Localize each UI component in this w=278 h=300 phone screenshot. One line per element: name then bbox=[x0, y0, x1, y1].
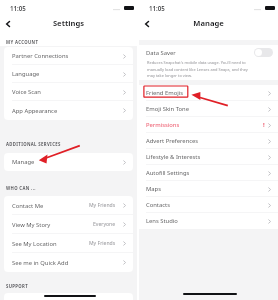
staticText: Advert Preferences bbox=[146, 137, 199, 145]
button[interactable]: See me in Quick Add bbox=[4, 253, 133, 272]
staticText: Maps bbox=[146, 185, 161, 193]
button[interactable]: Contacts bbox=[139, 197, 278, 213]
staticText: Data Saver bbox=[146, 49, 176, 57]
button[interactable]: Emoji Skin Tone bbox=[139, 101, 278, 117]
staticText: Language bbox=[12, 70, 40, 78]
button[interactable]: Language bbox=[4, 65, 133, 83]
staticText: Manage bbox=[12, 158, 35, 166]
staticText: My Friends bbox=[89, 240, 116, 247]
staticText: Manage bbox=[139, 18, 278, 28]
staticText: Voice Scan bbox=[12, 88, 41, 96]
button[interactable]: Contact Me bbox=[4, 196, 133, 215]
staticText: 11:05 bbox=[10, 4, 26, 12]
staticText: Everyone bbox=[93, 221, 116, 228]
button[interactable]: Permissions bbox=[139, 117, 278, 133]
button[interactable]: Data Saver toggle bbox=[254, 48, 273, 57]
button[interactable]: Autofill Settings bbox=[139, 165, 278, 181]
button[interactable]: Partner Connections bbox=[4, 47, 133, 65]
staticText: Contact Me bbox=[12, 202, 44, 210]
button[interactable]: App Appearance bbox=[4, 101, 133, 120]
staticText: Reduces Snapchat's mobile data usage. Yo… bbox=[147, 60, 251, 78]
staticText: Autofill Settings bbox=[146, 169, 190, 177]
staticText: Settings bbox=[0, 18, 137, 28]
button[interactable]: Lens Studio bbox=[139, 213, 278, 229]
staticText: My Friends bbox=[89, 202, 116, 209]
button[interactable]: Advert Preferences bbox=[139, 133, 278, 149]
button[interactable]: Back bbox=[140, 17, 154, 31]
button[interactable]: Friend Emojis bbox=[139, 85, 278, 101]
staticText: Partner Connections bbox=[12, 52, 69, 60]
button[interactable]: View My Story bbox=[4, 215, 133, 234]
staticText: See me in Quick Add bbox=[12, 259, 69, 267]
staticText: WHO CAN ... bbox=[6, 185, 36, 191]
button[interactable]: Lifestyle & Interests bbox=[139, 149, 278, 165]
button[interactable]: Maps bbox=[139, 181, 278, 197]
staticText: SUPPORT bbox=[6, 283, 29, 289]
staticText: Lens Studio bbox=[146, 217, 178, 225]
button[interactable]: Back bbox=[1, 17, 15, 31]
staticText: MY ACCOUNT bbox=[6, 39, 39, 45]
staticText: App Appearance bbox=[12, 107, 58, 115]
button[interactable]: Support bbox=[4, 293, 133, 300]
button[interactable]: Manage bbox=[4, 153, 133, 171]
staticText: ! bbox=[263, 121, 265, 129]
staticText: Permissions bbox=[146, 121, 180, 129]
staticText: Emoji Skin Tone bbox=[146, 105, 190, 113]
button[interactable]: Voice Scan bbox=[4, 83, 133, 101]
staticText: View My Story bbox=[12, 221, 51, 229]
staticText: Contacts bbox=[146, 201, 170, 209]
staticText: 11:05 bbox=[149, 4, 165, 12]
staticText: Lifestyle & Interests bbox=[146, 153, 201, 161]
button[interactable]: See My Location bbox=[4, 234, 133, 253]
staticText: See My Location bbox=[12, 240, 57, 248]
staticText: Friend Emojis bbox=[146, 89, 184, 97]
staticText: ADDITIONAL SERVICES bbox=[6, 141, 61, 147]
